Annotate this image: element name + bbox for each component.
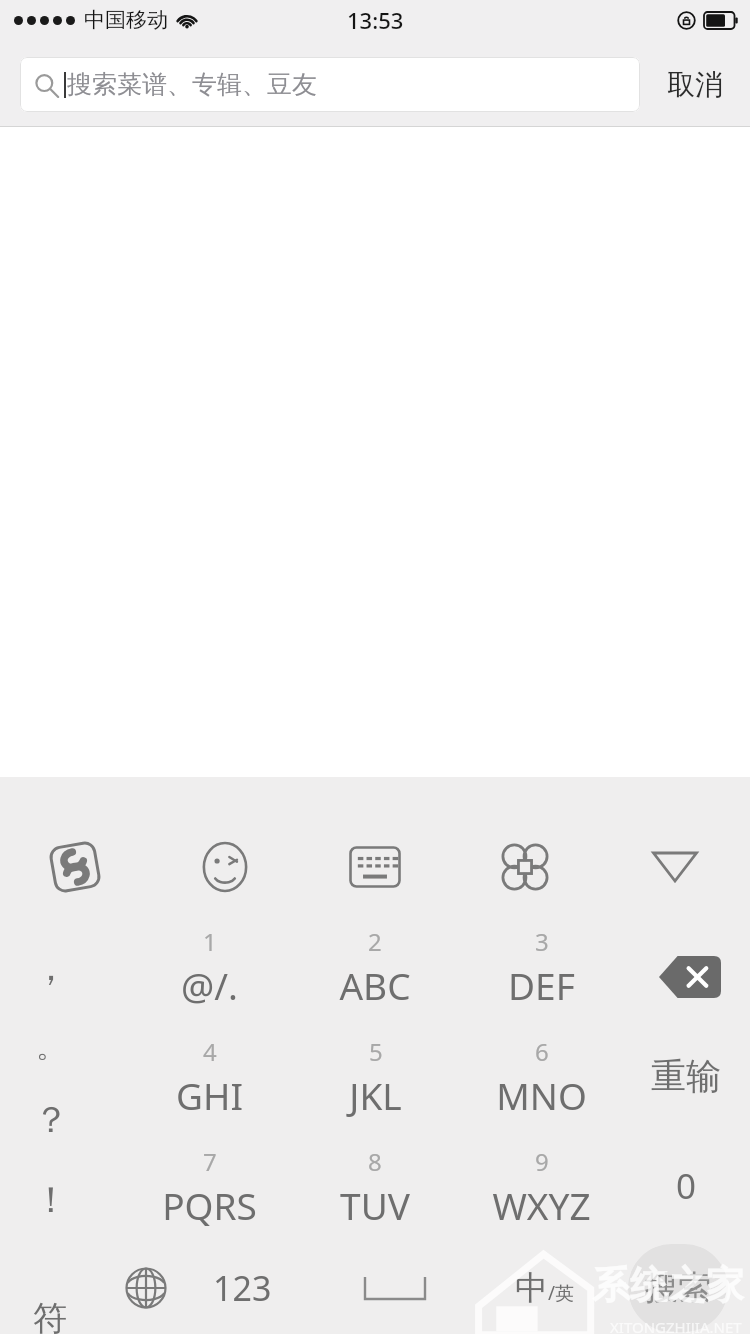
button[interactable]: 123 [197, 1253, 287, 1323]
button[interactable]: 中 [490, 1253, 600, 1323]
staticText: WXYZ [492, 1180, 591, 1230]
button[interactable]: ？ [6, 1084, 96, 1154]
button[interactable]: 符 [5, 1283, 95, 1334]
staticText: @/. [181, 960, 238, 1010]
staticText: XITONGZHIJIA.NET [610, 1317, 742, 1334]
button[interactable]: 6 [466, 1027, 616, 1127]
staticText: 13:53 [347, 5, 404, 35]
staticText: ABC [339, 960, 411, 1010]
button[interactable]: ， [6, 932, 96, 1002]
staticText: 搜索菜谱、专辑、豆友 [67, 69, 317, 100]
staticText: 7 [203, 1145, 217, 1178]
staticText: ！ [33, 1177, 69, 1222]
button[interactable]: 搜索菜谱、专辑、豆友 [20, 57, 640, 112]
button[interactable]: Emoji [150, 822, 300, 912]
staticText: 中国移动 [84, 7, 168, 33]
button[interactable]: Sogou input [0, 822, 150, 912]
staticText: ， [33, 945, 69, 990]
button[interactable]: 重输 [622, 1041, 750, 1111]
button[interactable]: 5 [300, 1027, 450, 1127]
staticText: JKL [349, 1070, 402, 1120]
staticText: 符 [33, 1297, 67, 1334]
button[interactable]: 8 [300, 1137, 450, 1237]
button[interactable]: ！ [6, 1164, 96, 1234]
button[interactable]: 。 [6, 1012, 96, 1082]
staticText: TUV [340, 1180, 410, 1230]
button[interactable]: 取消 [640, 54, 750, 114]
staticText: PQRS [162, 1180, 257, 1230]
button[interactable]: 7 [134, 1137, 284, 1237]
button[interactable]: Switch language [106, 1253, 186, 1323]
staticText: DEF [508, 960, 575, 1010]
button[interactable]: Space [330, 1253, 460, 1323]
staticText: MNO [496, 1070, 587, 1120]
staticText: 9 [535, 1145, 549, 1178]
button[interactable]: Hide keyboard [600, 822, 750, 912]
button[interactable]: 2 [300, 917, 450, 1017]
staticText: 0 [676, 1162, 697, 1210]
staticText: /英 [548, 1280, 575, 1306]
staticText: 。 [36, 1028, 66, 1066]
staticText: 1 [203, 925, 217, 958]
button[interactable]: 搜索 [620, 1243, 735, 1333]
staticText: GHI [176, 1070, 243, 1120]
staticText: 4 [203, 1035, 217, 1068]
staticText: 5 [369, 1035, 383, 1068]
staticText: 3 [535, 925, 549, 958]
button[interactable]: 3 [466, 917, 616, 1017]
staticText: 8 [368, 1145, 382, 1178]
button[interactable]: 0 [622, 1151, 750, 1221]
button[interactable]: Tools [450, 822, 600, 912]
button[interactable]: 4 [134, 1027, 284, 1127]
staticText: 取消 [667, 67, 723, 102]
staticText: 2 [368, 925, 382, 958]
button[interactable]: Keyboard layout [300, 822, 450, 912]
staticText: 123 [213, 1265, 272, 1311]
staticText: 6 [535, 1035, 549, 1068]
staticText: 重输 [651, 1054, 721, 1098]
staticText: 系统之家 [592, 1261, 744, 1309]
staticText: 搜索 [645, 1267, 711, 1309]
button[interactable]: Backspace [630, 942, 750, 1012]
button[interactable]: 1 [134, 917, 284, 1017]
button[interactable]: 9 [466, 1137, 616, 1237]
staticText: 中 [515, 1267, 548, 1309]
staticText: ？ [33, 1097, 69, 1142]
